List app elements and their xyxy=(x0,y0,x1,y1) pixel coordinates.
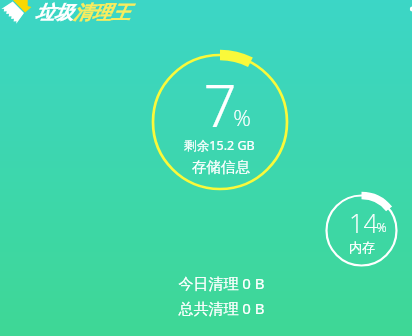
staticText: 存储信息 xyxy=(192,158,250,176)
button[interactable]: Settings xyxy=(396,0,412,20)
staticText: 剩余15.2 GB xyxy=(184,137,255,154)
button[interactable]: 14 xyxy=(319,188,404,273)
staticText: 7 xyxy=(203,65,237,144)
staticText: 内存 xyxy=(349,239,375,255)
staticText: % xyxy=(233,102,251,132)
button[interactable]: 垃圾清理王 xyxy=(0,0,140,28)
staticText: % xyxy=(376,219,387,236)
staticText: 今日清理 0 B xyxy=(178,273,265,293)
staticText: 垃圾清理王 xyxy=(35,1,130,25)
staticText: 总共清理 0 B xyxy=(178,298,265,318)
button[interactable]: 7 xyxy=(148,50,292,194)
staticText: 14 xyxy=(349,206,378,240)
